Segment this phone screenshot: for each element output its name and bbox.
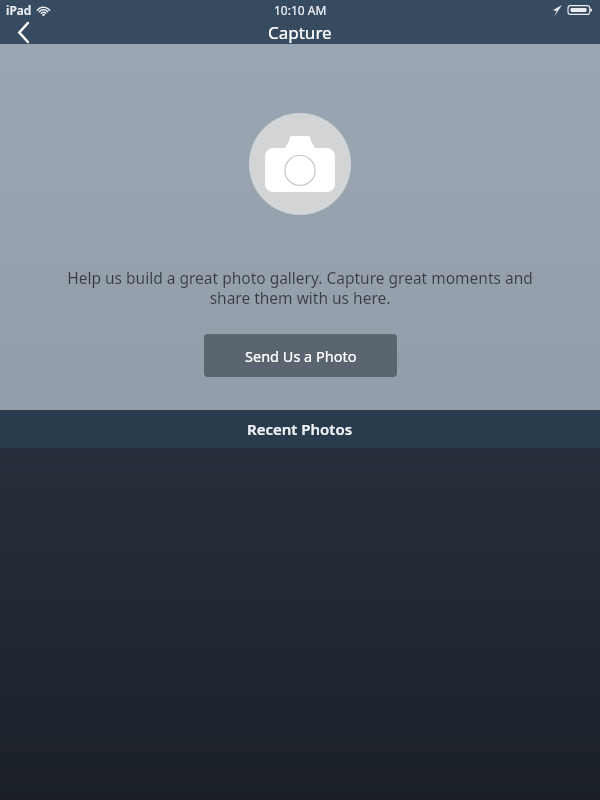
button[interactable]: Send Us a Photo [204,334,397,377]
staticText: Send Us a Photo [245,346,357,366]
staticText: 10:10 AM [274,2,327,18]
staticText: Help us build a great photo gallery. Cap… [20,267,580,309]
staticText: Capture [268,21,332,44]
button[interactable]: Recent Photos [0,410,600,448]
staticText: Recent Photos [247,419,353,439]
button[interactable]: Back [0,20,46,44]
staticText: iPad [6,2,32,18]
